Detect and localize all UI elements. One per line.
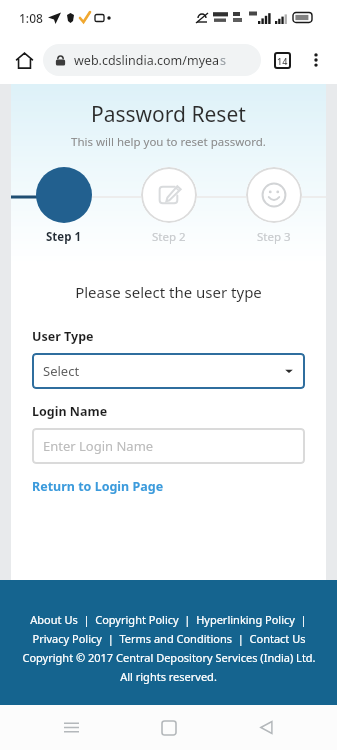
staticText: Password Reset — [91, 100, 246, 129]
button[interactable]: Step 3 — [221, 167, 326, 245]
staticText: Return to Login Page — [32, 478, 164, 495]
button[interactable]: Enter Login Name — [32, 428, 305, 464]
staticText: Step 1 — [46, 229, 82, 245]
button[interactable]: Select — [32, 353, 305, 389]
button[interactable]: Return to Login Page — [32, 478, 164, 495]
staticText: User Type — [32, 328, 94, 345]
button[interactable]: About Us | Copyright Policy | Hyperlinki… — [30, 612, 307, 627]
button[interactable]: More options — [299, 43, 333, 77]
staticText: s — [220, 52, 226, 69]
button[interactable]: Home — [143, 705, 195, 750]
button[interactable]: Privacy Policy | Terms and Conditions | … — [32, 631, 306, 646]
button[interactable]: Recent apps — [45, 705, 97, 750]
staticText: Enter Login Name — [43, 437, 154, 455]
button[interactable]: Tabs: 14 open — [265, 43, 299, 77]
staticText: web.cdslindia.com/myea — [74, 52, 220, 69]
staticText: Copyright © 2017 Central Depository Serv… — [22, 650, 316, 665]
button[interactable]: Home — [7, 43, 41, 77]
button[interactable]: Step 1 — [11, 167, 116, 245]
staticText: 14 — [277, 55, 288, 67]
staticText: 1:08 — [19, 10, 43, 26]
button[interactable]: web.cdslindia.com/myea — [43, 44, 261, 76]
staticText: Login Name — [32, 403, 108, 420]
staticText: This will help you to reset password. — [71, 134, 266, 150]
staticText: Select — [43, 362, 80, 380]
staticText: Step 3 — [257, 229, 291, 245]
staticText: All rights reserved. — [120, 669, 217, 684]
button[interactable]: Step 2 — [116, 167, 221, 245]
staticText: Step 2 — [152, 229, 186, 245]
staticText: Please select the user type — [75, 282, 262, 302]
button[interactable]: Back — [240, 705, 292, 750]
